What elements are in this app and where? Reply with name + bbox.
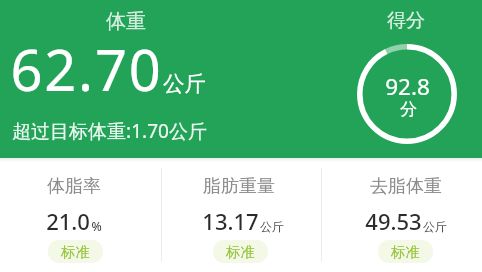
staticText: 得分 [387,9,425,33]
staticText: 去脂体重 [370,175,442,198]
staticText: 分 [400,99,417,120]
button[interactable] [0,162,149,268]
staticText: 公斤 [423,219,447,234]
button[interactable] [164,162,314,268]
staticText: 49.53 [365,206,422,236]
staticText: 脂肪重量 [203,175,275,198]
staticText: 体重 [106,9,146,34]
staticText: 92.8 [385,71,430,101]
staticText: 13.17 [202,206,259,236]
staticText: 标准 [61,243,90,261]
staticText: 体脂率 [47,175,101,198]
button[interactable]: 62.70 [0,29,218,109]
button[interactable] [331,162,481,268]
staticText: 标准 [226,243,255,261]
staticText: 标准 [391,243,420,261]
staticText: 21.0 [46,206,90,236]
staticText: 公斤 [163,70,206,97]
staticText: 公斤 [260,219,284,234]
button[interactable]: 92.8 [362,71,452,101]
staticText: % [91,218,102,234]
staticText: 超过目标体重:1.70公斤 [12,118,207,144]
staticText: 62.70 [10,31,163,107]
